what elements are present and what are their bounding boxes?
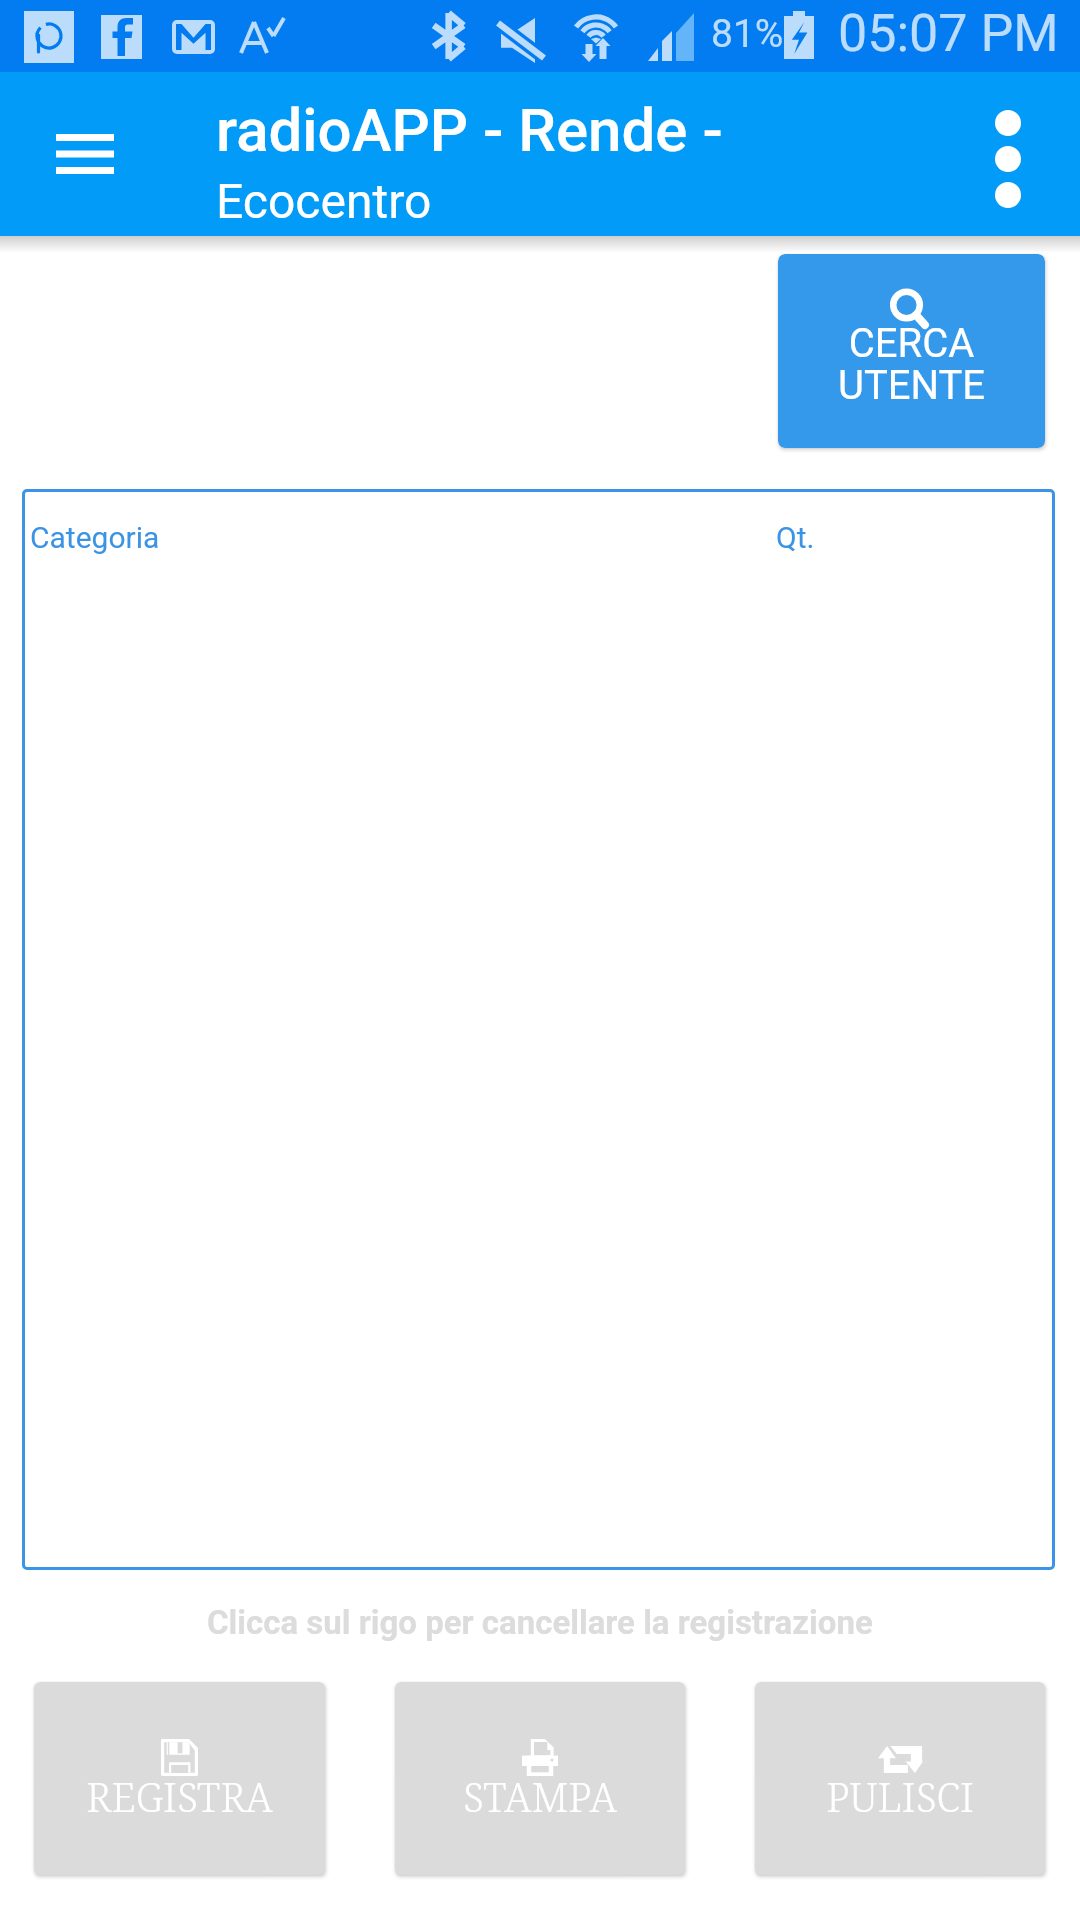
button[interactable]: Menu — [40, 109, 130, 199]
staticText: radioAPP - Rende - — [216, 95, 723, 165]
staticText: 05:07 PM — [838, 3, 1059, 64]
staticText: Categoria — [30, 520, 160, 555]
staticText: Clicca sul rigo per cancellare la regist… — [207, 1603, 873, 1642]
staticText: Ecocentro — [216, 173, 432, 229]
staticText: PULISCI — [755, 1769, 1045, 1823]
button[interactable]: More options — [964, 110, 1052, 198]
staticText: Qt. — [776, 520, 815, 555]
staticText: STAMPA — [395, 1769, 685, 1823]
staticText: CERCA UTENTE — [778, 320, 1045, 409]
staticText: 81% — [711, 11, 784, 57]
button[interactable]: REGISTRA — [34, 1682, 325, 1875]
button[interactable]: PULISCI — [755, 1682, 1045, 1875]
button[interactable]: STAMPA — [395, 1682, 685, 1875]
staticText: REGISTRA — [34, 1769, 325, 1823]
button[interactable]: Cerca utente — [778, 254, 1045, 448]
